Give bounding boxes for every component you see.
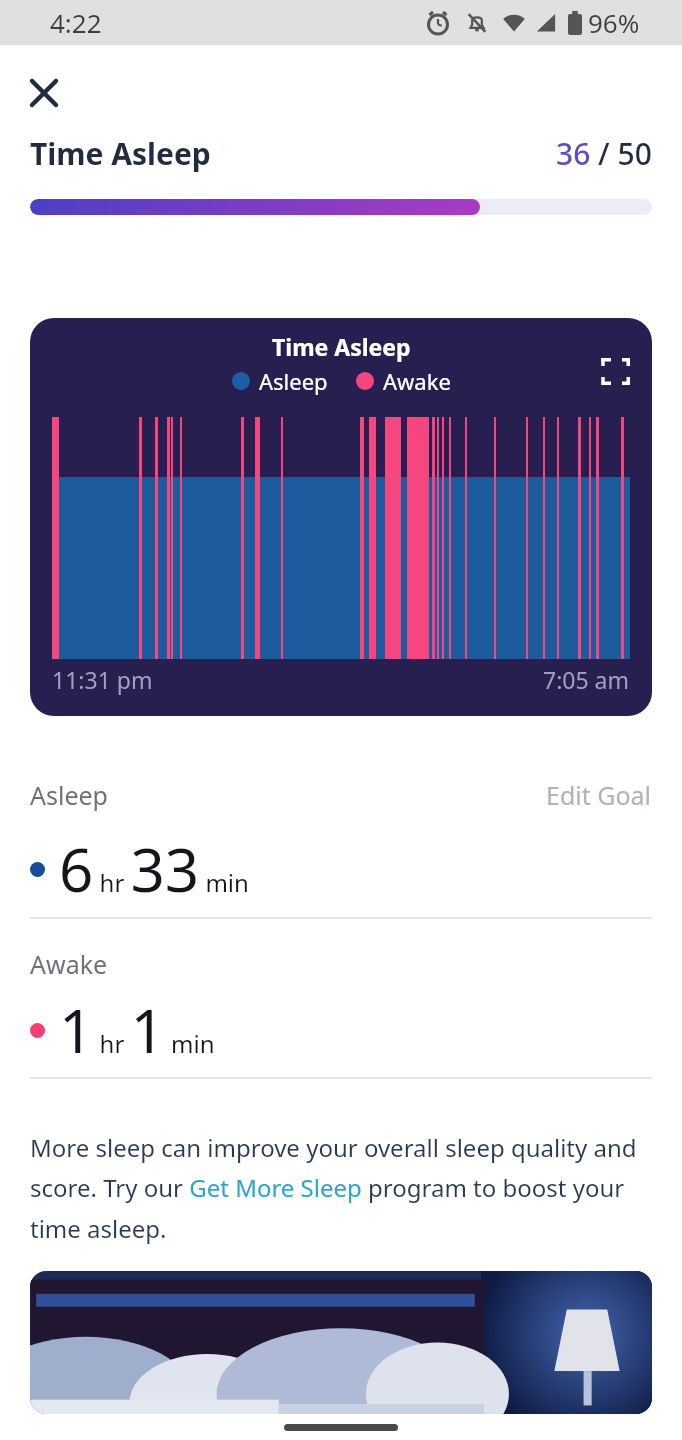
staticText: 7:05 am <box>543 664 630 695</box>
button[interactable] <box>30 79 58 107</box>
button[interactable]: Edit Goal <box>546 778 652 812</box>
staticText: Asleep <box>30 778 108 812</box>
staticText: Time Asleep <box>30 133 211 174</box>
staticText: Asleep <box>259 366 328 396</box>
button[interactable] <box>603 358 630 385</box>
staticText: 1 hr 1 min <box>59 989 215 1071</box>
staticText: Awake <box>30 947 108 981</box>
staticText: 36 / 50 <box>556 133 652 174</box>
staticText: 96% <box>588 5 640 40</box>
staticText: Awake <box>383 366 451 396</box>
staticText: 6 hr 33 min <box>59 828 249 910</box>
button[interactable] <box>30 1271 652 1414</box>
staticText: Time Asleep <box>272 331 411 362</box>
staticText: 11:31 pm <box>52 664 153 695</box>
staticText: More sleep can improve your overall slee… <box>30 1131 637 1245</box>
staticText: 4:22 <box>50 5 102 40</box>
